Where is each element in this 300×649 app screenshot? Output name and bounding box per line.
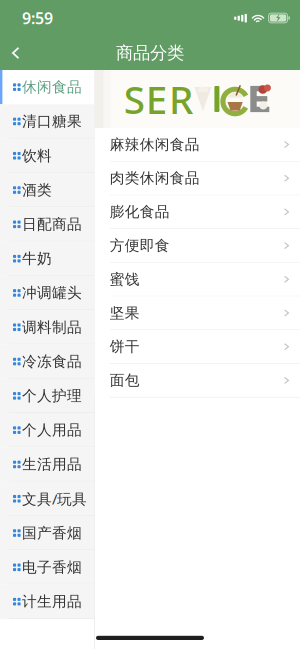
button[interactable]: 个人护理 bbox=[0, 379, 94, 413]
staticText: 电子香烟 bbox=[22, 558, 82, 576]
staticText: 休闲食品 bbox=[22, 78, 82, 96]
staticText: 生活用品 bbox=[22, 455, 82, 473]
staticText: 冷冻食品 bbox=[22, 352, 82, 370]
button[interactable]: 国产香烟 bbox=[0, 516, 94, 550]
button[interactable]: 酒类 bbox=[0, 173, 94, 207]
staticText: 文具/玩具 bbox=[22, 489, 87, 508]
staticText: 饮料 bbox=[22, 147, 52, 165]
button[interactable]: Back bbox=[0, 36, 32, 70]
staticText: 冲调罐头 bbox=[22, 284, 82, 302]
staticText: 调料制品 bbox=[22, 318, 82, 336]
button[interactable]: 蜜饯 bbox=[95, 263, 300, 296]
staticText: 牛奶 bbox=[22, 250, 52, 268]
button[interactable]: 日配商品 bbox=[0, 207, 94, 241]
button[interactable]: 生活用品 bbox=[0, 447, 94, 482]
button[interactable]: 牛奶 bbox=[0, 241, 94, 276]
button[interactable]: 膨化食品 bbox=[95, 195, 300, 229]
staticText: 方便即食 bbox=[110, 237, 170, 255]
button[interactable]: 文具/玩具 bbox=[0, 482, 94, 516]
staticText: 个人护理 bbox=[22, 387, 82, 405]
button[interactable]: 调料制品 bbox=[0, 310, 94, 344]
button[interactable]: 清口糖果 bbox=[0, 104, 94, 139]
button[interactable]: 肉类休闲食品 bbox=[95, 162, 300, 195]
staticText: 蜜饯 bbox=[110, 270, 140, 288]
button[interactable]: 电子香烟 bbox=[0, 550, 94, 584]
staticText: S bbox=[124, 73, 145, 125]
staticText: R bbox=[169, 73, 193, 125]
button[interactable]: 休闲食品 bbox=[0, 70, 94, 104]
button[interactable]: 坚果 bbox=[95, 296, 300, 330]
staticText: E bbox=[146, 73, 168, 125]
staticText: 计生用品 bbox=[22, 593, 82, 611]
staticText: 麻辣休闲食品 bbox=[110, 135, 200, 153]
button[interactable]: 饮料 bbox=[0, 139, 94, 173]
button[interactable]: 冲调罐头 bbox=[0, 276, 94, 310]
staticText: 清口糖果 bbox=[22, 112, 82, 130]
button[interactable]: 麻辣休闲食品 bbox=[95, 128, 300, 162]
staticText: 日配商品 bbox=[22, 215, 82, 233]
button[interactable]: 冷冻食品 bbox=[0, 344, 94, 379]
staticText: 国产香烟 bbox=[22, 524, 82, 542]
button[interactable]: 方便即食 bbox=[95, 229, 300, 263]
staticText: 面包 bbox=[110, 371, 140, 389]
button[interactable]: 计生用品 bbox=[0, 584, 94, 619]
staticText: 肉类休闲食品 bbox=[110, 169, 200, 187]
button[interactable]: 面包 bbox=[95, 364, 300, 398]
staticText: 个人用品 bbox=[22, 421, 82, 439]
staticText: 饼干 bbox=[110, 338, 140, 356]
staticText: 商品分类 bbox=[116, 42, 184, 64]
button[interactable]: 饼干 bbox=[95, 330, 300, 364]
staticText: 坚果 bbox=[110, 304, 140, 322]
staticText: 膨化食品 bbox=[110, 203, 170, 221]
staticText: 9:59 bbox=[22, 7, 53, 29]
staticText: 酒类 bbox=[22, 181, 52, 199]
button[interactable]: 个人用品 bbox=[0, 413, 94, 447]
